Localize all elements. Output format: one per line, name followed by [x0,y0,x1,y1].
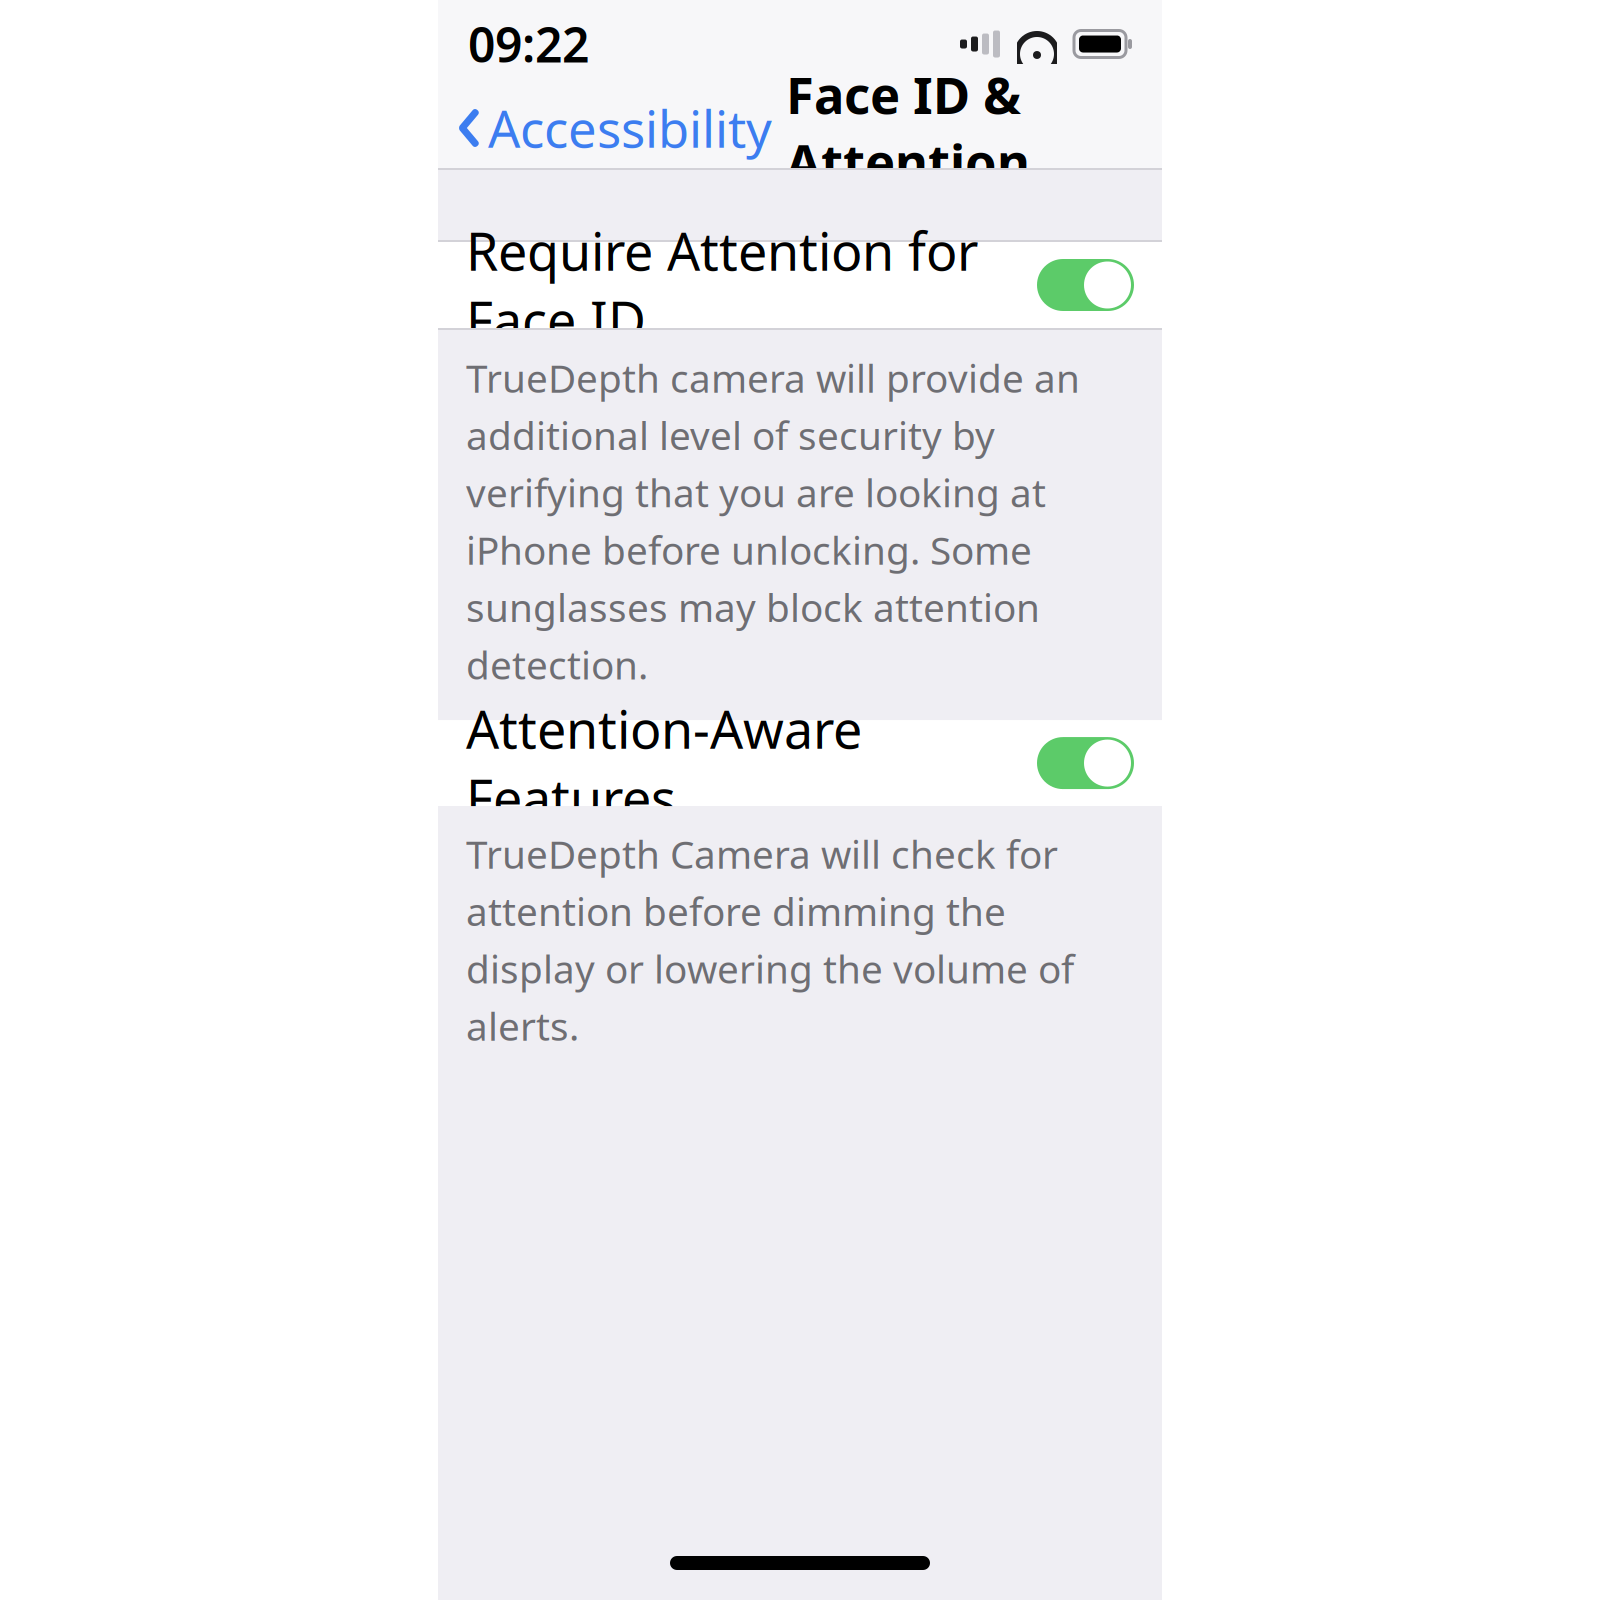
staticText: 09:22 [468,12,589,76]
staticText: Face ID & Attention [786,61,1030,195]
staticText: TrueDepth Camera will check for attentio… [466,828,1074,1051]
staticText: Attention-Aware Features [466,694,862,832]
button[interactable]: Attention-Aware Features [438,720,1162,806]
staticText: Accessibility [488,94,772,162]
staticText: TrueDepth camera will provide an additio… [466,352,1080,690]
button[interactable]: Require Attention for Face ID [438,242,1162,328]
button[interactable]: Accessibility [438,84,772,172]
staticText: Require Attention for Face ID [466,216,978,354]
